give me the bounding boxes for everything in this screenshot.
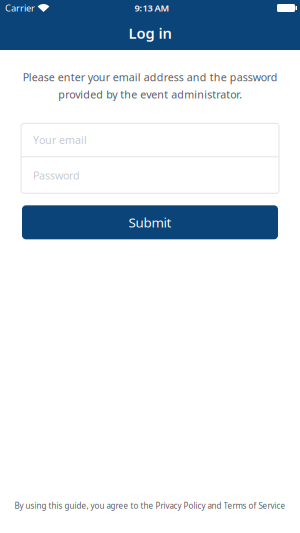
staticText: Password <box>33 168 80 182</box>
staticText: 9:13 AM <box>134 2 169 14</box>
staticText: Terms of Service <box>223 500 285 511</box>
staticText: Please enter your email address and the … <box>22 70 277 101</box>
button[interactable]: Terms of Service <box>223 500 285 511</box>
button[interactable]: Submit <box>22 205 278 239</box>
staticText: and <box>205 500 223 511</box>
button[interactable]: Privacy Policy <box>155 500 205 511</box>
button[interactable]: Your email <box>21 123 279 156</box>
button[interactable]: Password <box>21 157 279 193</box>
staticText: Carrier <box>5 2 35 14</box>
staticText: Your email <box>33 133 87 147</box>
staticText: By using this guide, you agree to the <box>14 500 155 511</box>
staticText: Log in <box>128 23 171 43</box>
staticText: Submit <box>128 213 171 231</box>
staticText: Privacy Policy <box>155 500 205 511</box>
